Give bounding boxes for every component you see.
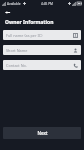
button[interactable]: Contact No. bbox=[3, 60, 81, 70]
staticText: Owner Information bbox=[5, 19, 54, 26]
button[interactable]: Short Name bbox=[3, 45, 81, 55]
button[interactable]: Next bbox=[3, 127, 81, 139]
staticText: Next bbox=[37, 130, 48, 136]
staticText: Full name (as per IC) bbox=[6, 33, 43, 38]
staticText: 4:45 PM bbox=[41, 2, 53, 6]
staticText: Short Name bbox=[6, 48, 28, 53]
button[interactable]: Back bbox=[3, 8, 11, 16]
staticText: Contact No. bbox=[6, 63, 27, 68]
button[interactable]: Full name (as per IC) bbox=[3, 30, 81, 40]
staticText: Available bbox=[7, 2, 21, 6]
